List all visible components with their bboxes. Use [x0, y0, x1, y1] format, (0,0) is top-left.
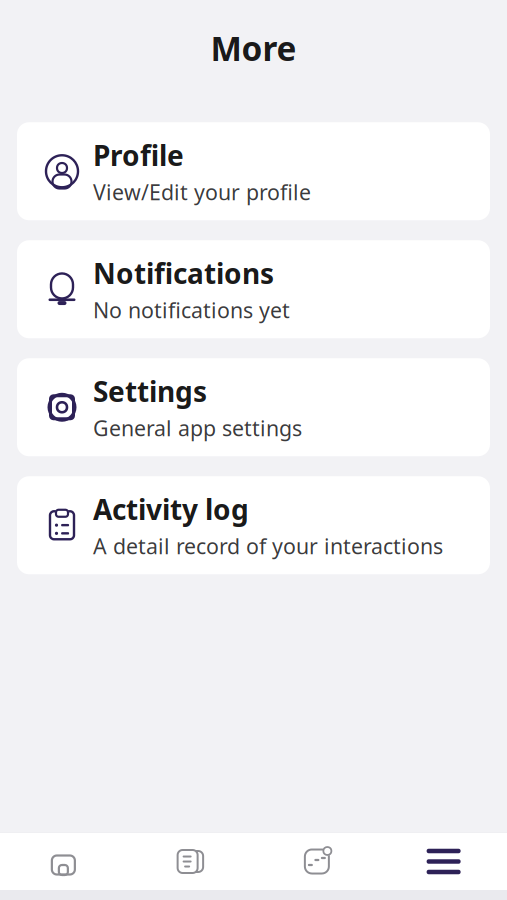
button[interactable]: Home: [0, 833, 127, 890]
staticText: View/Edit your profile: [93, 178, 311, 206]
staticText: Notifications: [93, 254, 274, 292]
staticText: Profile: [93, 136, 184, 174]
button[interactable]: More: [380, 833, 507, 890]
button[interactable]: Activity log: [17, 476, 490, 574]
button[interactable]: Insights: [253, 833, 380, 890]
staticText: More: [210, 26, 296, 70]
staticText: A detail record of your interactions: [93, 532, 443, 560]
button[interactable]: Profile: [17, 122, 490, 220]
button[interactable]: Settings: [17, 358, 490, 456]
staticText: General app settings: [93, 414, 302, 442]
button[interactable]: Notifications: [17, 240, 490, 338]
staticText: No notifications yet: [93, 296, 290, 324]
staticText: Settings: [93, 372, 207, 410]
staticText: Activity log: [93, 490, 249, 528]
button[interactable]: Documents: [127, 833, 254, 890]
